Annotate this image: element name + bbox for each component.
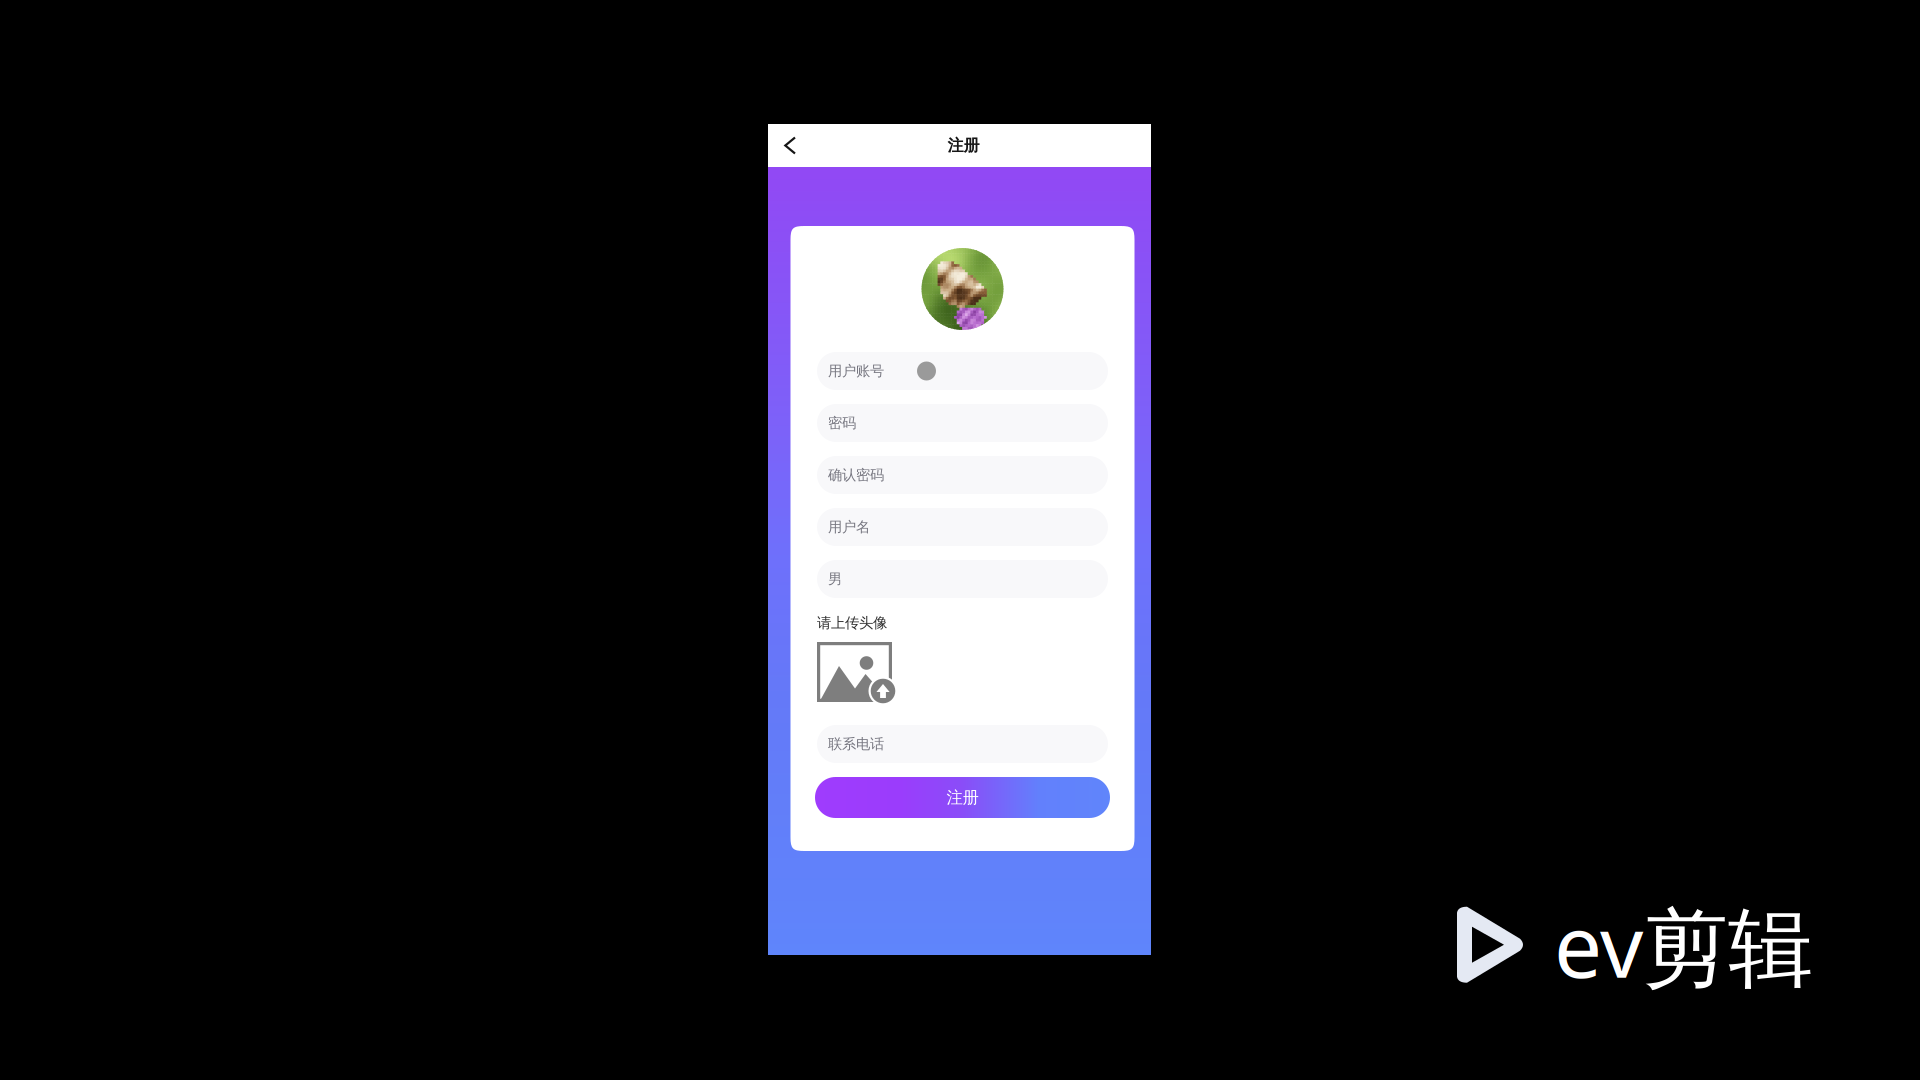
button[interactable]: 确认密码: [817, 456, 1108, 494]
button[interactable]: 联系电话: [817, 725, 1108, 763]
button[interactable]: 用户账号: [817, 352, 1108, 390]
staticText: 确认密码: [828, 466, 884, 484]
button[interactable]: Back: [772, 124, 808, 167]
button[interactable]: 注册: [815, 777, 1110, 818]
staticText: 密码: [828, 414, 856, 432]
staticText: 请上传头像: [817, 614, 887, 632]
staticText: 注册: [946, 787, 978, 808]
button[interactable]: 男: [817, 560, 1108, 598]
staticText: 注册: [947, 135, 979, 156]
button[interactable]: 密码: [817, 404, 1108, 442]
staticText: 用户名: [828, 518, 870, 536]
staticText: 用户账号: [828, 362, 884, 380]
staticText: 联系电话: [828, 735, 884, 753]
staticText: 男: [828, 570, 842, 588]
button[interactable]: Upload avatar: [817, 642, 892, 702]
staticText: ev剪辑: [1554, 886, 1813, 1003]
button[interactable]: 用户名: [817, 508, 1108, 546]
